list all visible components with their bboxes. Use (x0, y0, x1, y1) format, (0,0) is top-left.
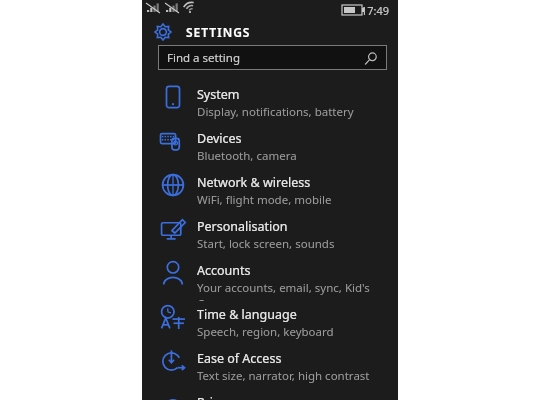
button[interactable]: System (142, 81, 398, 125)
button[interactable]: Accounts (142, 257, 398, 301)
other: Settings (154, 23, 172, 41)
staticText: Ease of Access (197, 350, 282, 367)
button[interactable]: Privacy (142, 389, 398, 400)
staticText: WiFi, flight mode, mobile (197, 192, 332, 208)
staticText: Bluetooth, camera (197, 148, 297, 164)
button[interactable]: Personalisation (142, 213, 398, 257)
staticText: SETTINGS (186, 24, 251, 40)
staticText: 17:49 (361, 3, 390, 18)
button[interactable]: Devices (142, 125, 398, 169)
staticText: System (197, 86, 240, 103)
button[interactable]: Settings (142, 20, 398, 44)
staticText: Find a setting (167, 50, 240, 66)
staticText: Display, notifications, battery (197, 104, 354, 120)
staticText: Personalisation (197, 218, 288, 235)
staticText: Start, lock screen, sounds (197, 236, 335, 252)
staticText: Speech, region, keyboard (197, 324, 334, 340)
staticText: Text size, narrator, high contrast (197, 368, 370, 384)
staticText: Accounts (197, 262, 251, 279)
staticText: Time & language (197, 306, 297, 323)
other: Search (367, 52, 379, 64)
staticText: Devices (197, 130, 242, 147)
button[interactable]: Network & wireless (142, 169, 398, 213)
button[interactable]: Ease of Access (142, 345, 398, 389)
button[interactable]: Time & language (142, 301, 398, 345)
staticText: Privacy (197, 394, 239, 400)
staticText: Your accounts, email, sync, Kid's Corner (197, 280, 398, 301)
staticText: Network & wireless (197, 174, 311, 191)
button[interactable]: Find a setting (158, 45, 387, 70)
